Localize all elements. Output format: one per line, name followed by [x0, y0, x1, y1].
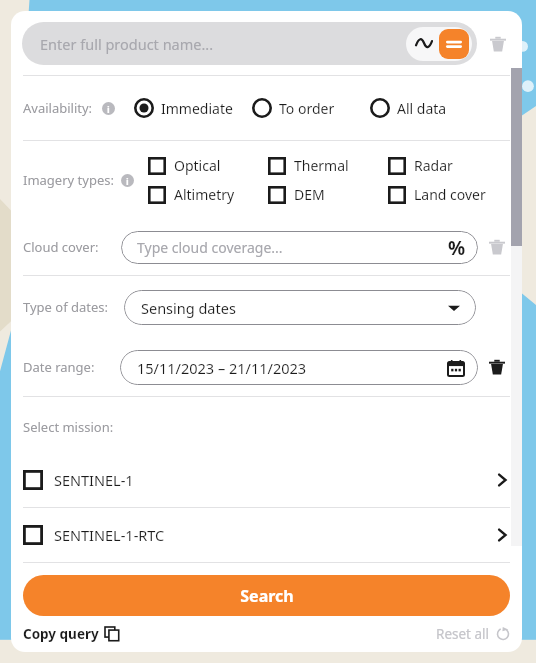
staticText: Select mission: — [23, 418, 114, 436]
staticText: Search — [240, 585, 294, 607]
button[interactable]: Info — [121, 174, 134, 187]
button[interactable]: To order — [252, 98, 370, 118]
staticText: Availability: — [23, 99, 93, 117]
button[interactable]: 15/11/2023 – 21/11/2023 — [120, 350, 478, 385]
staticText: Reset all — [436, 625, 490, 643]
button[interactable]: Info — [102, 102, 115, 115]
staticText: SENTINEL-1 — [54, 470, 134, 490]
staticText: Optical — [174, 156, 221, 175]
staticText: Altimetry — [174, 185, 235, 204]
staticText: Immediate — [161, 99, 233, 118]
staticText: Land cover — [414, 185, 486, 204]
staticText: Imagery types: — [23, 171, 114, 189]
button[interactable]: Search — [23, 575, 510, 616]
staticText: i — [126, 175, 129, 187]
button[interactable]: Thermal — [268, 156, 388, 175]
staticText: DEM — [294, 185, 325, 204]
button[interactable]: Clear — [484, 234, 510, 260]
staticText: Radar — [414, 156, 453, 175]
button[interactable]: Altimetry — [148, 185, 268, 204]
staticText: SENTINEL-1-RTC — [54, 525, 165, 545]
button[interactable]: Clear — [484, 354, 510, 380]
button[interactable]: Clear — [485, 31, 511, 57]
staticText: All data — [397, 99, 447, 118]
button[interactable]: Immediate — [134, 98, 252, 118]
staticText: Cloud cover: — [23, 238, 99, 256]
button[interactable]: Approximate match — [409, 29, 439, 59]
button[interactable]: Reset all — [436, 621, 510, 647]
button[interactable]: Enter full product name... — [22, 22, 477, 65]
button[interactable]: Optical — [148, 156, 268, 175]
staticText: Date range: — [23, 358, 95, 376]
button[interactable]: SENTINEL-1-RTC — [11, 508, 522, 562]
staticText: 15/11/2023 – 21/11/2023 — [137, 358, 448, 378]
button[interactable]: Land cover — [388, 185, 486, 204]
staticText: Type cloud coverage... — [137, 238, 448, 257]
staticText: Type of dates: — [23, 298, 109, 316]
staticText: Enter full product name... — [40, 34, 406, 54]
staticText: % — [448, 235, 466, 261]
button[interactable]: Type cloud coverage... — [121, 231, 478, 264]
button[interactable]: Exact match — [439, 29, 469, 59]
button[interactable]: Copy query — [23, 621, 119, 647]
staticText: To order — [279, 99, 335, 118]
staticText: Sensing dates — [141, 298, 448, 318]
button[interactable]: All data — [370, 98, 447, 118]
staticText: Copy query — [23, 625, 99, 643]
staticText: i — [107, 103, 110, 115]
button[interactable]: Sensing dates — [124, 290, 476, 325]
staticText: Thermal — [294, 156, 349, 175]
button[interactable]: Radar — [388, 156, 453, 175]
button[interactable]: DEM — [268, 185, 388, 204]
button[interactable]: SENTINEL-1 — [11, 453, 522, 507]
